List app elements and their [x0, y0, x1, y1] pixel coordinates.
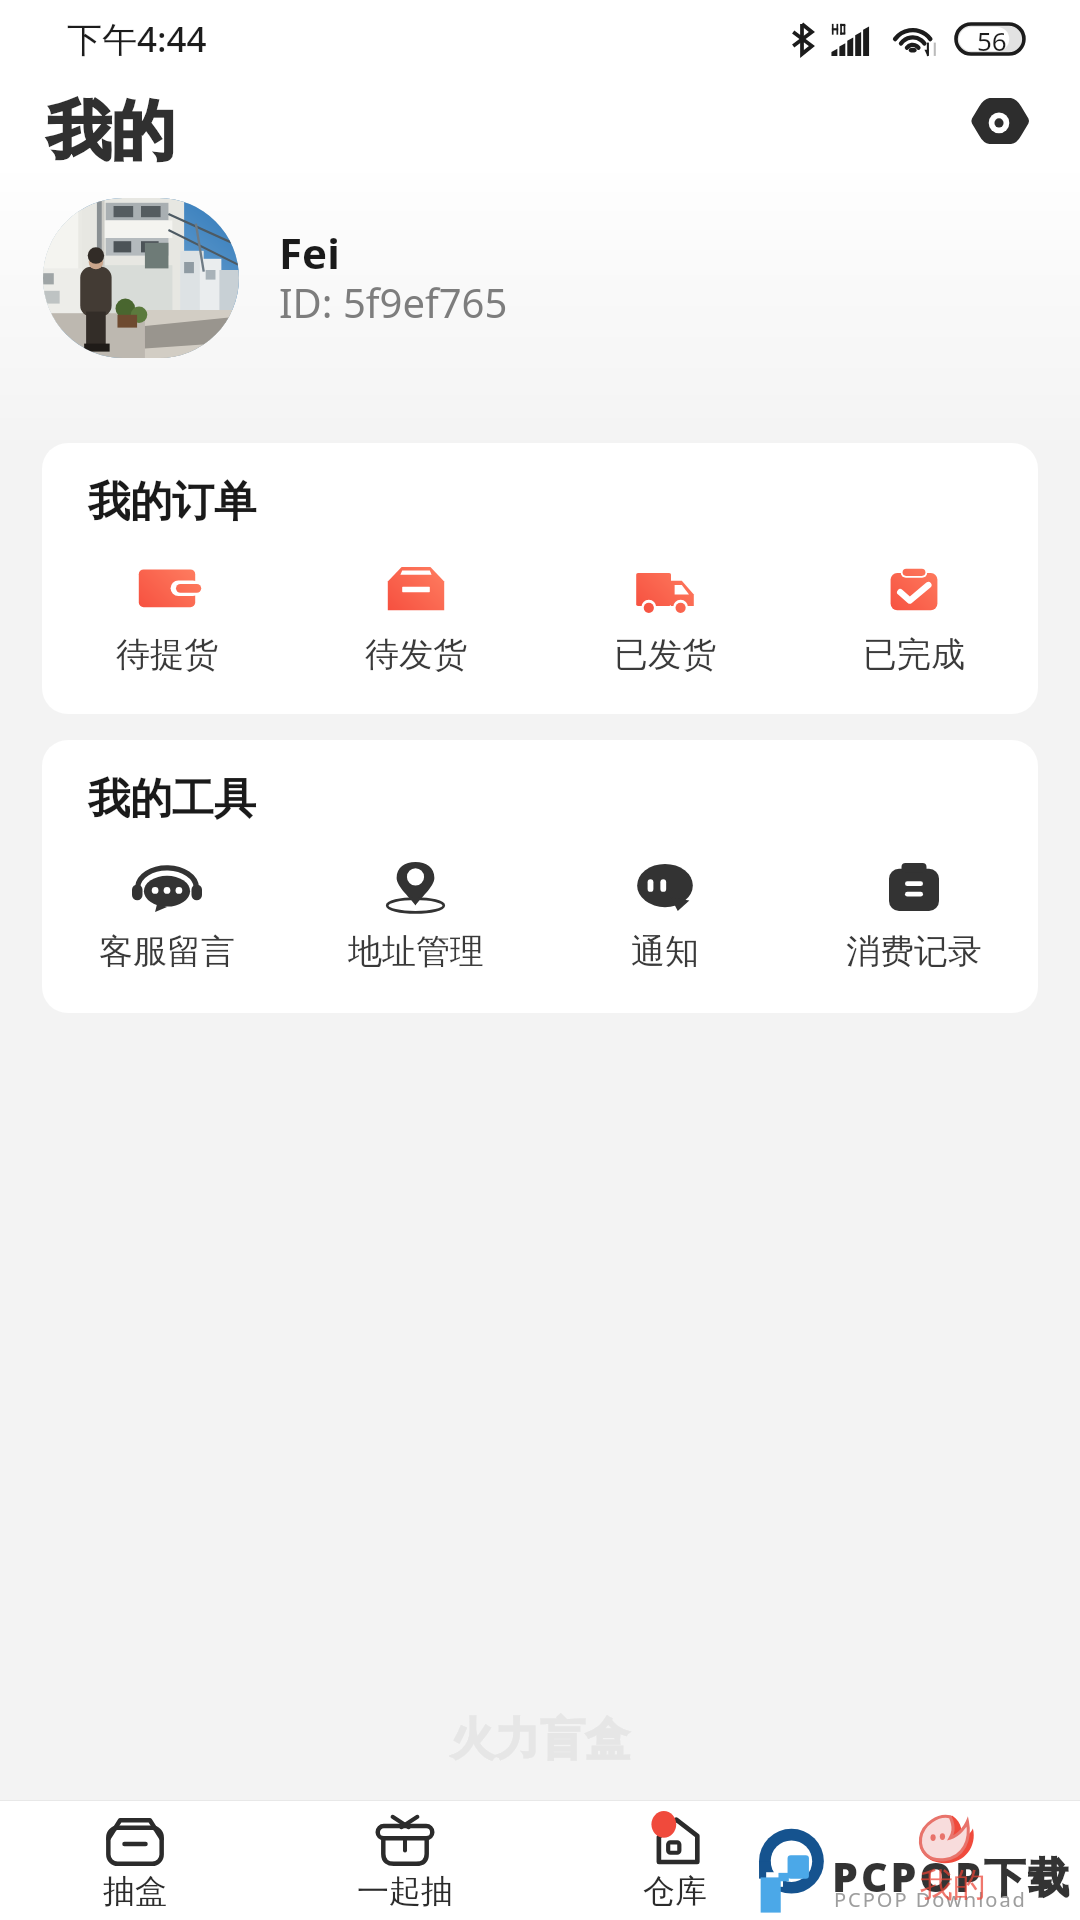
- button[interactable]: 待提货: [42, 561, 291, 676]
- staticText: Fei: [279, 224, 340, 281]
- staticText: 一起抽: [357, 1871, 453, 1911]
- button[interactable]: 消费记录: [789, 858, 1038, 973]
- staticText: 已发货: [614, 633, 716, 676]
- staticText: PCPOP下载: [832, 1848, 1073, 1904]
- staticText: 待发货: [365, 633, 467, 676]
- staticText: 抽盒: [103, 1871, 167, 1911]
- staticText: 客服留言: [99, 930, 235, 973]
- button[interactable]: 客服留言: [42, 858, 291, 973]
- button[interactable]: Settings: [954, 76, 1044, 166]
- staticText: 我的工具: [88, 773, 256, 826]
- staticText: PCPOP Download: [834, 1886, 1027, 1913]
- button[interactable]: 我的: [810, 1801, 1080, 1920]
- staticText: 56: [977, 23, 1007, 53]
- staticText: 我的订单: [88, 476, 256, 529]
- button[interactable]: 地址管理: [291, 858, 540, 973]
- button[interactable]: 一起抽: [270, 1801, 540, 1920]
- button[interactable]: 待发货: [291, 561, 540, 676]
- button[interactable]: 已完成: [789, 561, 1038, 676]
- staticText: 下午4:44: [67, 15, 207, 63]
- staticText: 待提货: [116, 633, 218, 676]
- staticText: 通知: [631, 930, 699, 973]
- button[interactable]: 通知: [540, 858, 789, 973]
- button[interactable]: 已发货: [540, 561, 789, 676]
- button[interactable]: Profile photo: [43, 198, 239, 358]
- staticText: 仓库: [643, 1871, 707, 1911]
- button[interactable]: 抽盒: [0, 1801, 270, 1920]
- staticText: 已完成: [863, 633, 965, 676]
- staticText: ID: 5f9ef765: [279, 275, 508, 329]
- staticText: 我的: [913, 1871, 977, 1911]
- staticText: 我的: [920, 1864, 986, 1906]
- staticText: 火力盲盒: [450, 1712, 630, 1767]
- button[interactable]: 仓库: [540, 1801, 810, 1920]
- staticText: 消费记录: [846, 930, 982, 973]
- staticText: 地址管理: [348, 930, 484, 973]
- staticText: 我的: [47, 91, 175, 172]
